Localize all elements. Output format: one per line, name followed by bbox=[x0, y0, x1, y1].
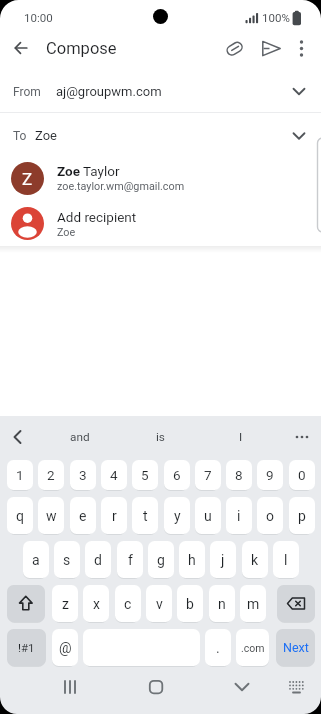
staticText: To bbox=[13, 129, 27, 143]
button[interactable]: b bbox=[177, 585, 203, 622]
button[interactable] bbox=[6, 424, 30, 450]
button[interactable]: 9 bbox=[257, 460, 283, 490]
button[interactable]: 3 bbox=[70, 460, 96, 490]
button[interactable]: 2 bbox=[38, 460, 64, 490]
button[interactable]: n bbox=[209, 585, 235, 622]
staticText: q bbox=[16, 508, 24, 524]
staticText: @ bbox=[59, 640, 72, 656]
staticText: y bbox=[174, 508, 181, 524]
button[interactable] bbox=[229, 674, 255, 700]
button[interactable]: . bbox=[205, 629, 231, 666]
button[interactable]: i bbox=[226, 497, 252, 534]
button[interactable]: j bbox=[210, 541, 236, 578]
button[interactable]: 7 bbox=[195, 460, 221, 490]
button[interactable] bbox=[277, 585, 315, 622]
button[interactable] bbox=[0, 72, 321, 112]
staticText: b bbox=[186, 596, 194, 612]
button[interactable]: 8 bbox=[226, 460, 252, 490]
staticText: n bbox=[218, 596, 226, 612]
button[interactable]: a bbox=[23, 541, 49, 578]
staticText: is bbox=[156, 430, 165, 444]
button[interactable] bbox=[0, 156, 315, 201]
staticText: Zoe bbox=[57, 226, 76, 239]
staticText: From bbox=[13, 85, 41, 99]
button[interactable]: p bbox=[289, 497, 315, 534]
staticText: Zoe Taylor bbox=[57, 163, 120, 179]
button[interactable]: d bbox=[85, 541, 111, 578]
button[interactable]: k bbox=[242, 541, 268, 578]
staticText: Add recipient bbox=[57, 209, 137, 225]
staticText: r bbox=[112, 508, 117, 524]
staticText: Next bbox=[283, 640, 309, 655]
staticText: aj@groupwm.com bbox=[56, 84, 162, 99]
staticText: Z bbox=[22, 169, 33, 189]
staticText: d bbox=[94, 552, 102, 568]
button[interactable] bbox=[0, 201, 315, 246]
button[interactable]: e bbox=[70, 497, 96, 534]
button[interactable]: 1 bbox=[7, 460, 33, 490]
button[interactable]: 5 bbox=[132, 460, 158, 490]
button[interactable]: w bbox=[38, 497, 64, 534]
staticText: o bbox=[266, 508, 274, 524]
button[interactable]: v bbox=[146, 585, 172, 622]
button[interactable]: g bbox=[148, 541, 174, 578]
button[interactable]: !#1 bbox=[7, 629, 46, 666]
button[interactable] bbox=[293, 36, 311, 61]
button[interactable]: r bbox=[101, 497, 127, 534]
staticText: x bbox=[93, 596, 100, 612]
staticText: h bbox=[188, 552, 196, 568]
button[interactable] bbox=[284, 676, 310, 702]
button[interactable] bbox=[288, 424, 316, 450]
button[interactable] bbox=[57, 674, 83, 700]
button[interactable] bbox=[8, 34, 36, 62]
staticText: 3 bbox=[79, 467, 87, 483]
staticText: z bbox=[62, 596, 69, 612]
button[interactable]: h bbox=[179, 541, 205, 578]
button[interactable]: .com bbox=[236, 629, 269, 666]
staticText: Compose bbox=[46, 39, 117, 58]
button[interactable]: 4 bbox=[101, 460, 127, 490]
button[interactable]: y bbox=[164, 497, 190, 534]
staticText: i bbox=[237, 508, 241, 524]
button[interactable]: 6 bbox=[164, 460, 190, 490]
staticText: !#1 bbox=[18, 641, 35, 654]
staticText: 1 bbox=[16, 467, 24, 483]
button[interactable]: Next bbox=[276, 629, 315, 666]
staticText: l bbox=[284, 552, 288, 568]
button[interactable] bbox=[143, 674, 169, 700]
button[interactable]: q bbox=[7, 497, 33, 534]
button[interactable]: z bbox=[52, 585, 78, 622]
staticText: v bbox=[156, 596, 163, 612]
button[interactable] bbox=[259, 36, 284, 61]
staticText: . bbox=[216, 640, 220, 656]
staticText: zoe.taylor.wm@gmail.com bbox=[57, 180, 185, 193]
button[interactable]: o bbox=[257, 497, 283, 534]
button[interactable] bbox=[0, 113, 321, 155]
button[interactable]: t bbox=[132, 497, 158, 534]
staticText: t bbox=[143, 508, 148, 524]
button[interactable]: s bbox=[54, 541, 80, 578]
button[interactable]: u bbox=[195, 497, 221, 534]
button[interactable]: 0 bbox=[289, 460, 315, 490]
button[interactable]: x bbox=[83, 585, 109, 622]
button[interactable]: m bbox=[240, 585, 266, 622]
button[interactable] bbox=[222, 36, 247, 61]
staticText: p bbox=[298, 508, 306, 524]
staticText: m bbox=[247, 596, 260, 612]
button[interactable]: f bbox=[117, 541, 143, 578]
button[interactable]: l bbox=[273, 541, 299, 578]
button[interactable]: c bbox=[115, 585, 141, 622]
staticText: f bbox=[128, 552, 133, 568]
staticText: 9 bbox=[266, 467, 274, 483]
staticText: .com bbox=[241, 642, 265, 654]
staticText: s bbox=[63, 552, 71, 568]
staticText: 10:00 bbox=[24, 11, 53, 24]
staticText: and bbox=[70, 430, 90, 444]
button[interactable] bbox=[7, 585, 45, 622]
button[interactable]: @ bbox=[52, 629, 78, 666]
staticText: j bbox=[221, 552, 225, 568]
staticText: e bbox=[79, 508, 87, 524]
staticText: a bbox=[32, 552, 40, 568]
staticText: g bbox=[157, 552, 165, 568]
